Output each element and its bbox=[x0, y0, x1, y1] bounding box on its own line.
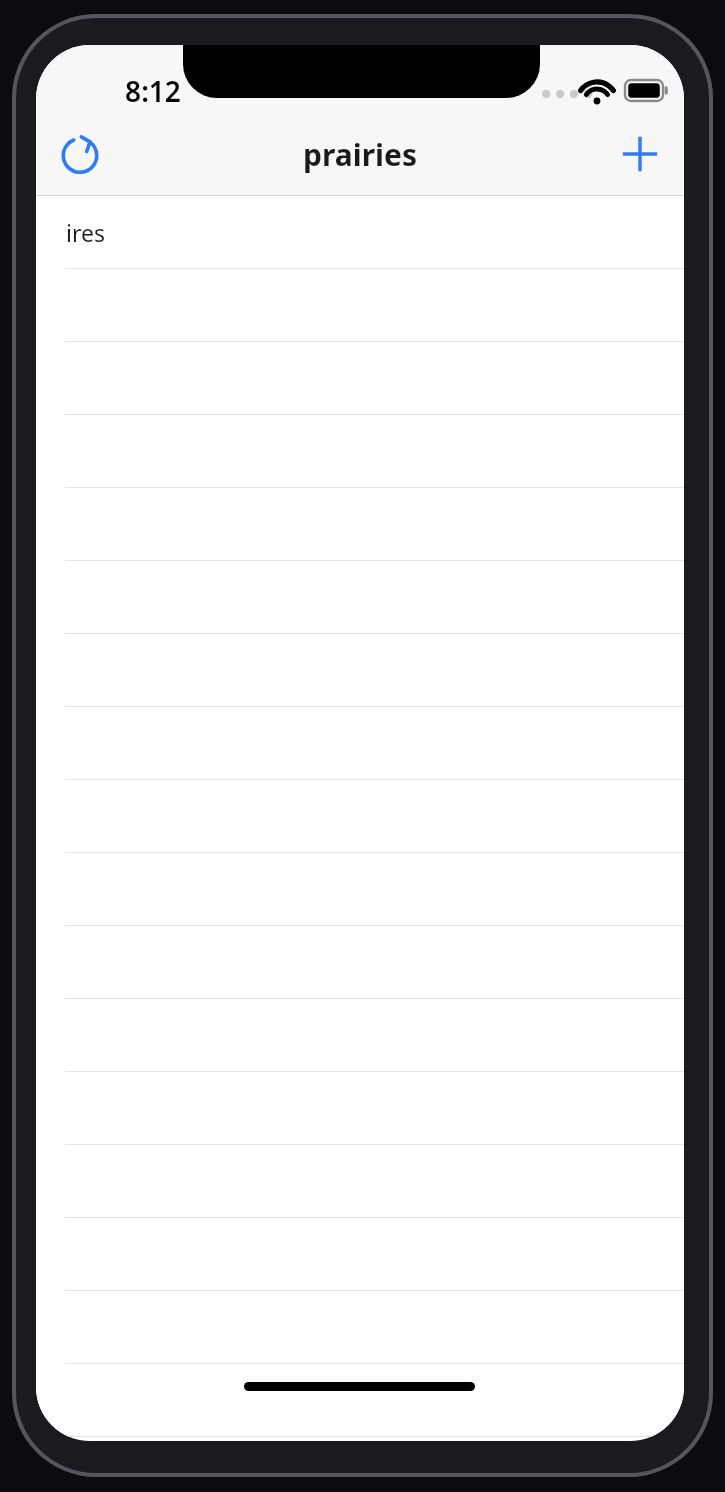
button[interactable] bbox=[36, 926, 684, 999]
staticText: ires bbox=[66, 217, 105, 248]
button[interactable] bbox=[36, 853, 684, 926]
staticText: prairies bbox=[303, 134, 418, 175]
button[interactable]: Add bbox=[610, 124, 670, 184]
button[interactable] bbox=[36, 707, 684, 780]
button[interactable]: Refresh bbox=[50, 124, 110, 184]
button[interactable] bbox=[36, 780, 684, 853]
button[interactable] bbox=[36, 488, 684, 561]
button[interactable] bbox=[36, 269, 684, 342]
button[interactable] bbox=[36, 999, 684, 1072]
button[interactable] bbox=[36, 342, 684, 415]
button[interactable]: ires bbox=[36, 196, 684, 269]
button[interactable] bbox=[36, 1145, 684, 1218]
button[interactable] bbox=[36, 634, 684, 707]
staticText: 8:12 bbox=[125, 72, 181, 110]
button[interactable] bbox=[36, 1291, 684, 1364]
button[interactable] bbox=[36, 1072, 684, 1145]
button[interactable] bbox=[36, 1218, 684, 1291]
button[interactable] bbox=[36, 415, 684, 488]
button[interactable] bbox=[36, 1364, 684, 1437]
button[interactable] bbox=[36, 561, 684, 634]
